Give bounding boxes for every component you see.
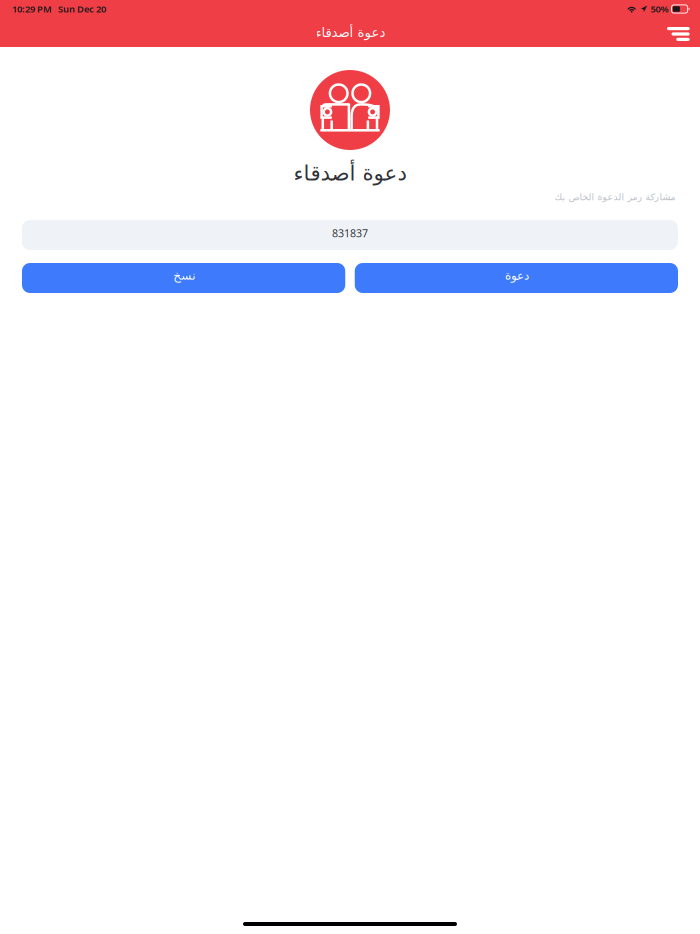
button[interactable]: Menu xyxy=(651,18,700,46)
staticText: دعوة xyxy=(504,269,528,282)
staticText: نسخ xyxy=(173,269,195,282)
staticText: Sun Dec 20 xyxy=(58,3,106,15)
staticText: 831837 xyxy=(332,226,368,240)
staticText: دعوة أصدقاء xyxy=(293,161,407,185)
button[interactable]: نسخ xyxy=(22,263,345,293)
staticText: 10:29 PM xyxy=(12,3,52,15)
button[interactable]: دعوة xyxy=(355,263,678,293)
staticText: دعوة أصدقاء xyxy=(315,25,385,40)
staticText: مشاركة رمز الدعوة الخاص بك xyxy=(554,192,675,202)
staticText: 50% xyxy=(651,3,669,15)
